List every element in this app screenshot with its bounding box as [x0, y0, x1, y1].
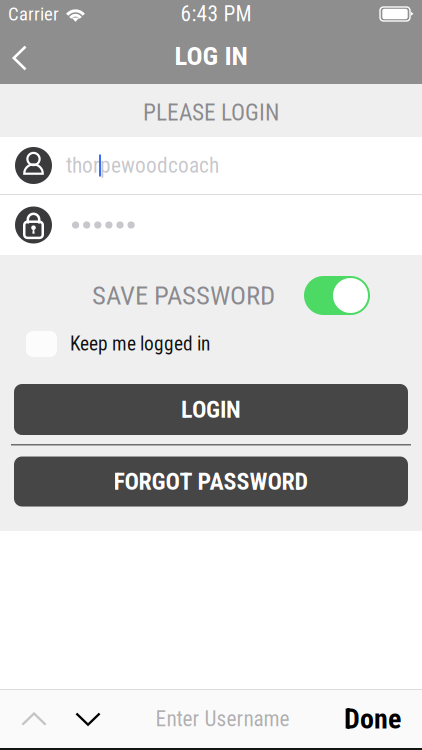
staticText: Enter Username [155, 706, 289, 731]
staticText: LOGIN [181, 395, 241, 423]
button[interactable]: LOGIN [0, 384, 422, 435]
button[interactable]: Done [333, 689, 412, 749]
staticText: FORGOT PASSWORD [113, 467, 308, 495]
button[interactable]: Save password [304, 276, 370, 315]
staticText: 6:43 PM [180, 1, 251, 26]
staticText: Carrier [8, 3, 59, 25]
staticText: PLEASE LOGIN [143, 99, 279, 126]
button[interactable]: Next field [64, 697, 112, 740]
button[interactable]: FORGOT PASSWORD [0, 456, 422, 506]
button[interactable]: Back [0, 29, 44, 83]
staticText: SAVE PASSWORD [92, 280, 275, 311]
staticText: Done [344, 703, 401, 735]
button[interactable]: Previous field [10, 697, 58, 740]
staticText: thorpewoodcoach [66, 153, 219, 178]
staticText: LOG IN [174, 40, 247, 72]
staticText: Keep me logged in [70, 333, 210, 355]
